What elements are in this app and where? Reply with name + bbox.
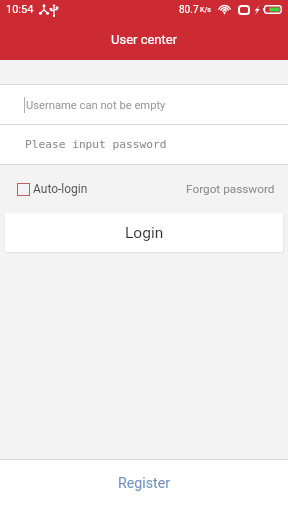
staticText: Auto-login	[33, 182, 88, 196]
other: Wi-Fi	[218, 4, 231, 15]
other: Charging	[254, 5, 260, 15]
staticText: Login	[125, 224, 164, 242]
staticText: K/s	[200, 6, 211, 14]
other: USB connected	[50, 4, 58, 16]
button[interactable]: Username can not be empty	[0, 85, 288, 124]
staticText: Please input password	[25, 138, 167, 151]
staticText: Register	[118, 475, 170, 492]
staticText: Username can not be empty	[26, 99, 166, 112]
button[interactable]: Login	[5, 213, 283, 252]
button[interactable]: Please input password	[0, 125, 288, 164]
staticText: User center	[111, 32, 178, 47]
other: Screen rotation	[238, 5, 250, 15]
other: Battery 80 percent	[263, 5, 282, 14]
button[interactable]: Forgot password	[178, 176, 288, 202]
other: Nearby share active	[39, 4, 49, 15]
button[interactable]: Auto-login	[17, 182, 88, 196]
staticText: 10:54	[6, 3, 34, 16]
staticText: Forgot password	[186, 182, 275, 196]
button[interactable]: Register	[0, 460, 288, 512]
staticText: 80.7	[179, 4, 199, 16]
